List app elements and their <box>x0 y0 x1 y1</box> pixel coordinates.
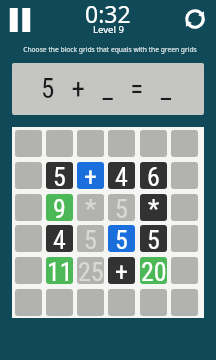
button[interactable]: 5 <box>46 162 73 189</box>
staticText: Choose the block grids that equals with … <box>23 45 197 54</box>
staticText: 4 <box>53 225 66 252</box>
button[interactable]: 25 <box>77 257 104 284</box>
staticText: 4 <box>115 162 128 189</box>
button[interactable] <box>46 130 73 157</box>
button[interactable] <box>171 130 198 157</box>
staticText: 9 <box>53 194 66 221</box>
button[interactable]: Pause <box>6 6 34 34</box>
button[interactable] <box>15 257 42 284</box>
button[interactable] <box>140 289 167 316</box>
button[interactable]: 6 <box>140 162 167 189</box>
button[interactable]: + <box>108 257 135 284</box>
staticText: 5 <box>53 162 66 189</box>
staticText: 11 <box>47 257 73 284</box>
staticText: Level 9 <box>93 23 124 36</box>
staticText: 5 <box>115 225 128 252</box>
staticText: 20 <box>141 257 167 284</box>
button[interactable] <box>108 289 135 316</box>
button[interactable]: 9 <box>46 194 73 221</box>
button[interactable]: * <box>140 194 167 221</box>
button[interactable]: 20 <box>140 257 167 284</box>
staticText: 5 + _ = _ <box>41 73 177 105</box>
button[interactable] <box>171 257 198 284</box>
button[interactable] <box>15 194 42 221</box>
staticText: 5 <box>115 194 128 221</box>
button[interactable]: 5 <box>77 225 104 252</box>
button[interactable]: 5 <box>108 194 135 221</box>
staticText: 0:32 <box>85 0 131 29</box>
staticText: 5 <box>84 225 97 252</box>
button[interactable] <box>15 225 42 252</box>
button[interactable]: * <box>77 194 104 221</box>
staticText: 6 <box>147 162 160 189</box>
button[interactable]: 4 <box>108 162 135 189</box>
button[interactable] <box>46 289 73 316</box>
button[interactable] <box>15 130 42 157</box>
button[interactable] <box>140 130 167 157</box>
button[interactable] <box>171 289 198 316</box>
staticText: + <box>115 257 128 284</box>
button[interactable] <box>108 130 135 157</box>
button[interactable]: Restart <box>184 8 206 30</box>
staticText: + <box>84 162 97 189</box>
button[interactable] <box>171 194 198 221</box>
button[interactable] <box>77 289 104 316</box>
button[interactable]: 11 <box>46 257 73 284</box>
staticText: * <box>85 194 97 221</box>
button[interactable] <box>77 130 104 157</box>
button[interactable]: + <box>77 162 104 189</box>
button[interactable]: 5 <box>140 225 167 252</box>
button[interactable] <box>15 289 42 316</box>
button[interactable] <box>15 162 42 189</box>
staticText: 5 <box>147 225 160 252</box>
staticText: * <box>148 194 160 221</box>
staticText: 25 <box>78 257 104 284</box>
button[interactable] <box>171 162 198 189</box>
button[interactable]: 4 <box>46 225 73 252</box>
button[interactable]: 5 <box>108 225 135 252</box>
button[interactable] <box>171 225 198 252</box>
